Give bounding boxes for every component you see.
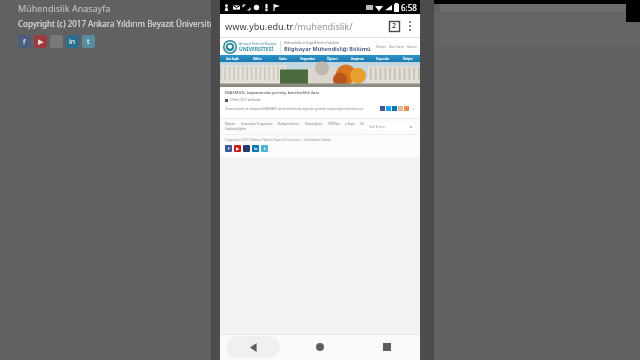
staticText: Hızlı Erişim bbox=[369, 125, 385, 129]
button[interactable]: Home bbox=[286, 334, 353, 360]
staticText: Programlar bbox=[300, 57, 315, 61]
staticText: Üniversitemiz ile anlaşmalı ERASMUS üniv… bbox=[225, 107, 377, 111]
staticText: Mühendislik Anasayfa bbox=[18, 2, 111, 14]
button[interactable]: Ulusal Ajans bbox=[305, 122, 323, 126]
staticText: www.ybu.edu.tr bbox=[225, 20, 294, 32]
button[interactable]: Bologna Süreci bbox=[278, 122, 300, 126]
staticText: Mezun bbox=[407, 45, 417, 49]
button[interactable]: Social link bbox=[234, 145, 241, 152]
button[interactable]: Social link bbox=[261, 145, 268, 152]
button[interactable]: Tabs bbox=[388, 20, 400, 32]
staticText: 2 Ekim 2017 tarihinde bbox=[230, 98, 261, 102]
staticText: t bbox=[264, 146, 266, 151]
staticText: f bbox=[228, 146, 230, 151]
button[interactable]: Lisansüstü Programlar bbox=[241, 122, 273, 126]
button[interactable]: Social link bbox=[225, 145, 232, 152]
staticText: Copyright (c) 2017 Ankara Yıldırım Beyaz… bbox=[18, 18, 220, 29]
button[interactable]: Kadro bbox=[270, 55, 295, 62]
button[interactable]: Recent apps bbox=[353, 334, 420, 360]
staticText: 2 bbox=[392, 21, 397, 31]
staticText: + bbox=[412, 106, 415, 111]
button[interactable]: Programlar bbox=[295, 55, 320, 62]
staticText: Bize Ulaşın bbox=[389, 45, 405, 49]
staticText: Lisansüstü Programlar bbox=[241, 122, 273, 126]
button[interactable]: Social link bbox=[82, 35, 95, 48]
button[interactable]: Social link bbox=[34, 35, 47, 48]
staticText: SKS bbox=[360, 122, 364, 126]
staticText: İletişim bbox=[376, 45, 387, 49]
staticText: Ankara Yıldırım Beyazıt bbox=[239, 41, 277, 46]
staticText: İletişim bbox=[403, 57, 413, 61]
button[interactable]: Social link bbox=[66, 35, 79, 48]
button[interactable]: SKS bbox=[360, 122, 364, 126]
button[interactable]: İletişim bbox=[395, 55, 420, 62]
staticText: İletişim bbox=[225, 122, 236, 126]
button[interactable]: e-Kayıt bbox=[345, 122, 355, 126]
staticText: ÜNİVERSİTESİ bbox=[239, 46, 274, 53]
staticText: Ulusal Ajans bbox=[305, 122, 323, 126]
staticText: ▶ bbox=[38, 38, 44, 46]
staticText: Bilgisayar Mühendisliği Bölümü bbox=[284, 45, 371, 52]
button[interactable]: www.ybu.edu.tr bbox=[225, 20, 384, 32]
staticText: /muhendislik/bilgisayar/c bbox=[294, 20, 384, 32]
button[interactable]: Öğrenci bbox=[320, 55, 345, 62]
staticText: Ana Sayfa bbox=[226, 57, 239, 61]
staticText: Bologna Süreci bbox=[278, 122, 300, 126]
button[interactable]: Ana Sayfa bbox=[220, 55, 245, 62]
button[interactable]: Bölüm bbox=[245, 55, 270, 62]
staticText: ▶ bbox=[236, 146, 240, 151]
button[interactable]: Araştırma bbox=[345, 55, 370, 62]
staticText: Kadro bbox=[279, 57, 287, 61]
button[interactable]: Social link bbox=[18, 35, 31, 48]
button[interactable]: İletişim bbox=[225, 122, 236, 126]
staticText: t bbox=[87, 37, 90, 47]
staticText: Copyright (c) 2017 Ankara Yıldırım Beyaz… bbox=[225, 138, 332, 142]
button[interactable]: Duyurular bbox=[370, 55, 395, 62]
staticText: Duyurular bbox=[376, 57, 390, 61]
staticText: Uzaktan Eğitim bbox=[225, 127, 247, 131]
staticText: Mühendislik ve Doğa Bilimleri Fakültesi bbox=[284, 41, 340, 45]
staticText: Öğrenci bbox=[327, 57, 338, 61]
staticText: f bbox=[23, 37, 26, 47]
button[interactable]: Social link bbox=[243, 145, 250, 152]
staticText: in bbox=[69, 37, 76, 47]
staticText: 6:58 bbox=[401, 2, 417, 13]
staticText: ERASMUS+ kapsamında yurtdışı hareketlili… bbox=[225, 90, 320, 95]
staticText: YÖK Net bbox=[328, 122, 340, 126]
button[interactable]: Back bbox=[220, 334, 286, 360]
button[interactable]: Social link bbox=[252, 145, 259, 152]
staticText: in bbox=[254, 146, 258, 151]
staticText: e-Kayıt bbox=[345, 122, 355, 126]
button[interactable]: Hızlı Erişim bbox=[367, 123, 415, 130]
staticText: Bölüm bbox=[253, 57, 262, 61]
button[interactable]: YÖK Net bbox=[328, 122, 340, 126]
button[interactable]: More options bbox=[405, 19, 415, 33]
staticText: Araştırma bbox=[351, 57, 364, 61]
